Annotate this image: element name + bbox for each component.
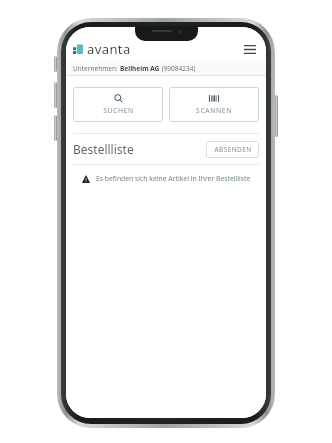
staticText: (99084234): [160, 64, 196, 73]
button[interactable]: SCANNEN: [169, 87, 259, 122]
staticText: Es befinden sich keine Artikel in Ihrer …: [96, 174, 251, 183]
staticText: SUCHEN: [103, 106, 134, 115]
button[interactable]: Menü: [241, 40, 259, 58]
staticText: Bestellliste: [73, 141, 134, 157]
staticText: SCANNEN: [196, 106, 232, 115]
button[interactable]: SUCHEN: [73, 87, 163, 122]
staticText: Bellheim AG: [120, 64, 160, 73]
staticText: Unternehmen:: [73, 64, 120, 73]
button[interactable]: ABSENDEN: [206, 141, 259, 158]
staticText: ABSENDEN: [214, 145, 252, 154]
staticText: avanta: [87, 40, 131, 58]
